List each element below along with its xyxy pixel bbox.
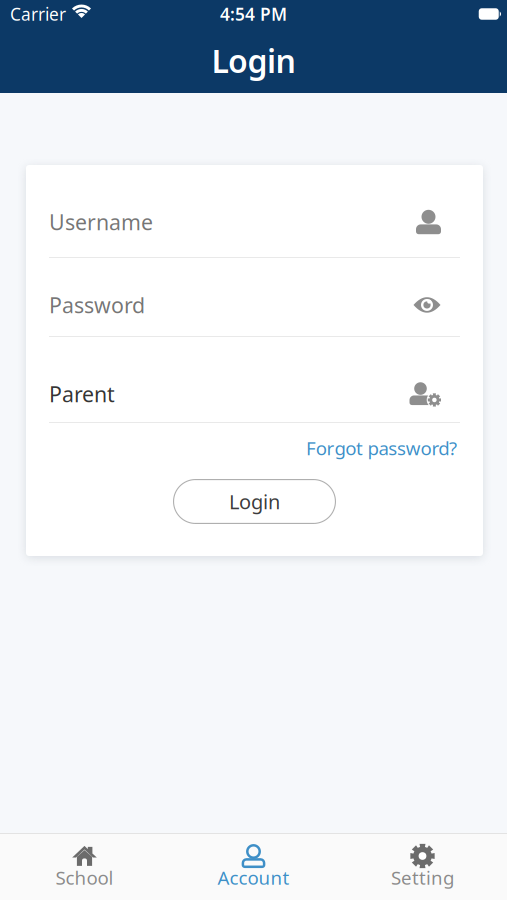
staticText: 4:54 PM (220, 2, 287, 25)
staticText: Account (217, 865, 289, 890)
staticText: School (55, 865, 113, 890)
staticText: Parent (49, 380, 115, 408)
button[interactable]: Forgot password? (306, 436, 457, 460)
staticText: Login (211, 39, 295, 82)
staticText: Forgot password? (306, 436, 457, 460)
button[interactable]: Account (169, 844, 338, 893)
staticText: Setting (391, 865, 454, 890)
button[interactable]: Login (173, 479, 336, 524)
staticText: Carrier (10, 2, 66, 25)
staticText: Login (229, 488, 280, 515)
staticText: Username (49, 208, 153, 236)
button[interactable]: Setting (338, 844, 507, 893)
button[interactable]: School (0, 844, 169, 893)
staticText: Password (49, 291, 145, 319)
